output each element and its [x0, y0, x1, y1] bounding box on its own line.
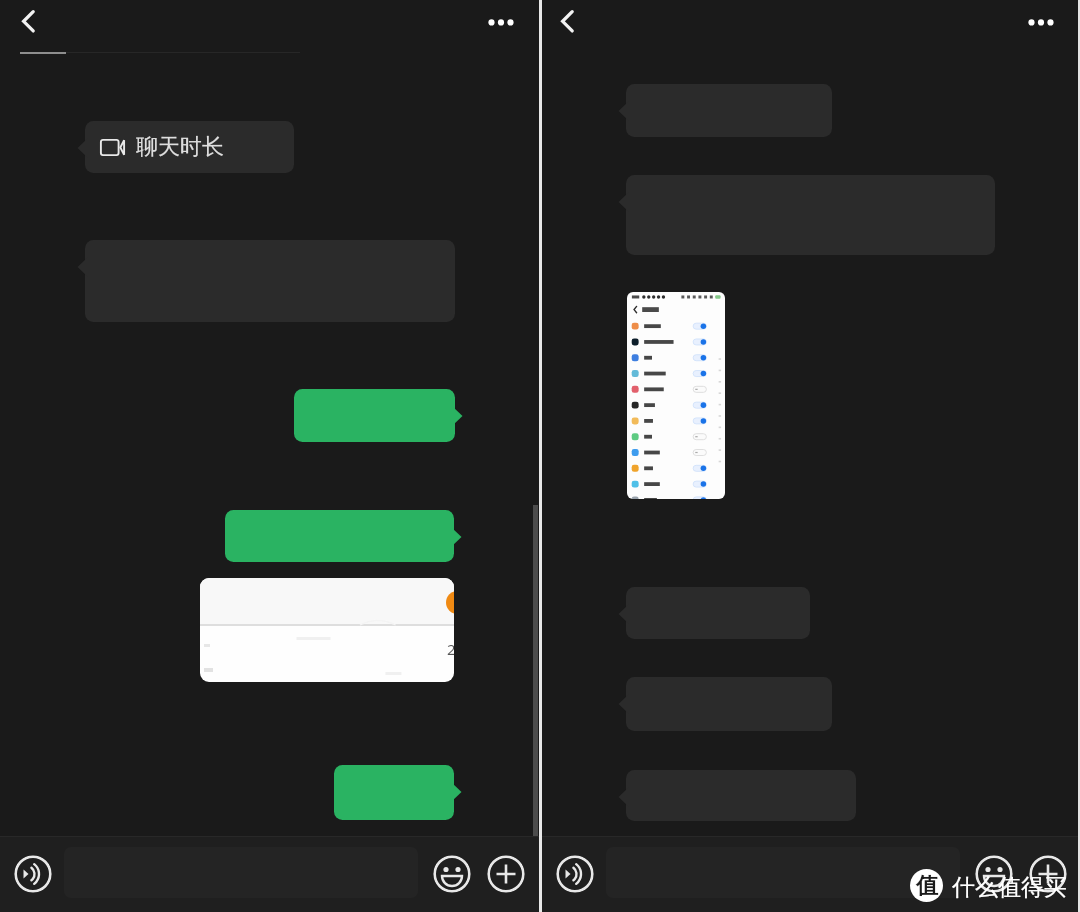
- button[interactable]: [294, 389, 455, 442]
- button[interactable]: More options: [1016, 0, 1066, 44]
- button[interactable]: [334, 765, 454, 820]
- button[interactable]: [606, 847, 960, 898]
- staticText: 什么值得买: [952, 873, 1067, 902]
- button[interactable]: Voice input: [14, 855, 52, 893]
- button[interactable]: 聊天时长: [85, 121, 294, 173]
- button[interactable]: More actions: [1029, 855, 1067, 893]
- button[interactable]: Voice input: [556, 855, 594, 893]
- button[interactable]: More options: [476, 0, 526, 44]
- button[interactable]: Back: [11, 0, 45, 44]
- staticText: 2: [447, 639, 454, 659]
- button[interactable]: More actions: [487, 855, 525, 893]
- button[interactable]: Emoji: [433, 855, 471, 893]
- button[interactable]: [627, 292, 725, 499]
- staticText: 值: [916, 872, 938, 900]
- button[interactable]: Back: [550, 0, 584, 44]
- staticText: 聊天时长: [136, 133, 224, 161]
- button[interactable]: [225, 510, 454, 562]
- button[interactable]: 2: [200, 578, 454, 682]
- button[interactable]: Emoji: [975, 855, 1013, 893]
